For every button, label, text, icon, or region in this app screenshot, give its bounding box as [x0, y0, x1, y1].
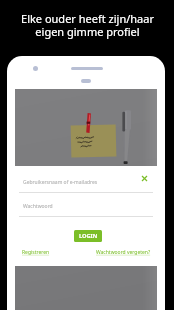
staticText: Wachtwoord [23, 203, 53, 210]
button[interactable]: Registreren [22, 249, 50, 256]
staticText: Elke ouder heeft zijn/haar eigen gimme p… [21, 11, 154, 39]
button[interactable]: Wachtwoord vergeten? [96, 249, 151, 256]
button[interactable]: LOGIN [74, 230, 102, 242]
staticText: LOGIN [79, 232, 98, 240]
staticText: Gebruikersnaam of e-mailadres [23, 179, 98, 186]
button[interactable]: Sluiten [136, 170, 152, 186]
